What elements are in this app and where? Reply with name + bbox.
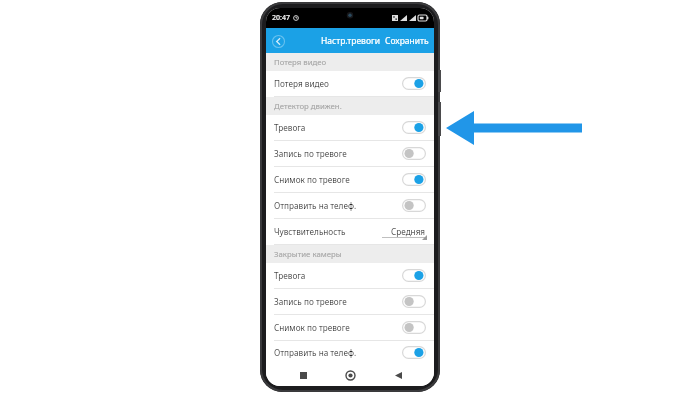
button[interactable]: Back bbox=[270, 33, 286, 49]
button[interactable]: Запись по тревоге bbox=[266, 289, 434, 315]
button[interactable]: Тревога bbox=[266, 263, 434, 289]
staticText: Сохранить bbox=[385, 35, 429, 47]
button[interactable]: Потеря видео bbox=[266, 71, 434, 97]
button[interactable]: Home bbox=[339, 364, 361, 386]
button[interactable]: Запись по тревоге bbox=[266, 141, 434, 167]
staticText: Отправить на телеф. bbox=[274, 347, 357, 358]
staticText: Тревога bbox=[274, 122, 306, 133]
staticText: Запись по тревоге bbox=[274, 148, 347, 159]
button[interactable]: Back bbox=[387, 364, 409, 386]
staticText: Потеря видео bbox=[274, 78, 329, 89]
staticText: Детектор движен. bbox=[274, 101, 342, 112]
staticText: Запись по тревоге bbox=[274, 296, 347, 307]
staticText: Снимок по тревоге bbox=[274, 322, 350, 333]
staticText: Закрытие камеры bbox=[274, 249, 342, 260]
staticText: 20:47 bbox=[272, 13, 290, 23]
staticText: Тревога bbox=[274, 270, 306, 281]
button[interactable]: Отправить на телеф. bbox=[266, 193, 434, 219]
staticText: Снимок по тревоге bbox=[274, 174, 350, 185]
button[interactable]: Снимок по тревоге bbox=[266, 315, 434, 341]
button[interactable]: Сохранить bbox=[380, 31, 434, 51]
button[interactable]: Снимок по тревоге bbox=[266, 167, 434, 193]
staticText: Средняя bbox=[391, 226, 426, 237]
button[interactable]: Отправить на телеф. bbox=[266, 341, 434, 364]
staticText: Настр.тревоги bbox=[321, 35, 380, 47]
button[interactable]: Тревога bbox=[266, 115, 434, 141]
staticText: Чувствительность bbox=[274, 226, 346, 237]
staticText: Отправить на телеф. bbox=[274, 200, 357, 211]
staticText: Потеря видео bbox=[274, 57, 327, 68]
button[interactable]: Recent apps bbox=[292, 364, 314, 386]
other: Pointer arrow bbox=[444, 112, 584, 144]
button[interactable]: Чувствительность bbox=[266, 219, 434, 245]
